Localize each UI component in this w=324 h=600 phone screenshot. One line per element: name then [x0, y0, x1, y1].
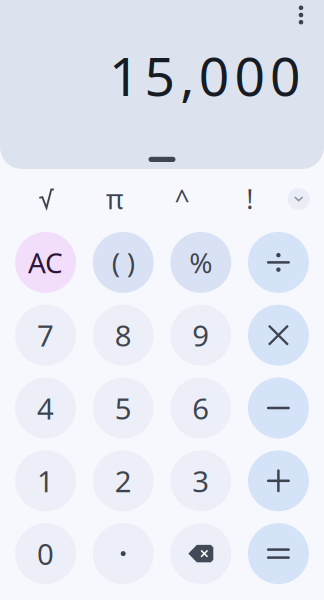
button[interactable]: All clear	[7, 226, 84, 299]
button[interactable]: 5	[84, 372, 162, 444]
staticText: %	[189, 244, 212, 281]
staticText: 1	[37, 461, 54, 500]
button[interactable]: 3	[162, 444, 240, 517]
button[interactable]: Parentheses	[84, 226, 162, 299]
button[interactable]: 7	[7, 299, 84, 372]
button[interactable]: 2	[84, 444, 162, 517]
button[interactable]: Add	[240, 444, 317, 517]
staticText: !	[246, 181, 253, 217]
staticText: 3	[192, 461, 209, 500]
button[interactable]: Pi	[80, 177, 148, 221]
button[interactable]: Divide	[240, 226, 317, 299]
button[interactable]: 0	[7, 517, 84, 590]
staticText: 4	[37, 388, 54, 427]
staticText: 8	[115, 316, 132, 355]
staticText: 0	[37, 534, 54, 573]
button[interactable]: Multiply	[240, 299, 317, 372]
staticText: 5	[115, 388, 132, 427]
staticText: 2	[115, 461, 132, 500]
button[interactable]: Factorial	[216, 177, 284, 221]
button[interactable]: 8	[84, 299, 162, 372]
staticText: ^	[175, 181, 190, 217]
button[interactable]: Show more functions	[284, 177, 314, 221]
button[interactable]: Decimal point	[84, 517, 162, 590]
button[interactable]: 1	[7, 444, 84, 517]
staticText: 15,000	[109, 40, 301, 111]
staticText: 9	[192, 316, 209, 355]
button[interactable]: More options	[286, 0, 316, 30]
staticText: AC	[28, 244, 63, 281]
staticText: π	[106, 181, 123, 217]
button[interactable]: Percent	[162, 226, 240, 299]
button[interactable]: Subtract	[240, 372, 317, 444]
button[interactable]: 6	[162, 372, 240, 444]
button[interactable]: 9	[162, 299, 240, 372]
staticText: 7	[37, 316, 54, 355]
button[interactable]: Square root	[13, 177, 80, 221]
button[interactable]: Equals	[240, 517, 317, 590]
staticText: ( )	[112, 244, 135, 281]
button[interactable]: 4	[7, 372, 84, 444]
button[interactable]: Exponent	[148, 177, 216, 221]
button[interactable]: Backspace	[162, 517, 240, 590]
staticText: 6	[192, 388, 209, 427]
